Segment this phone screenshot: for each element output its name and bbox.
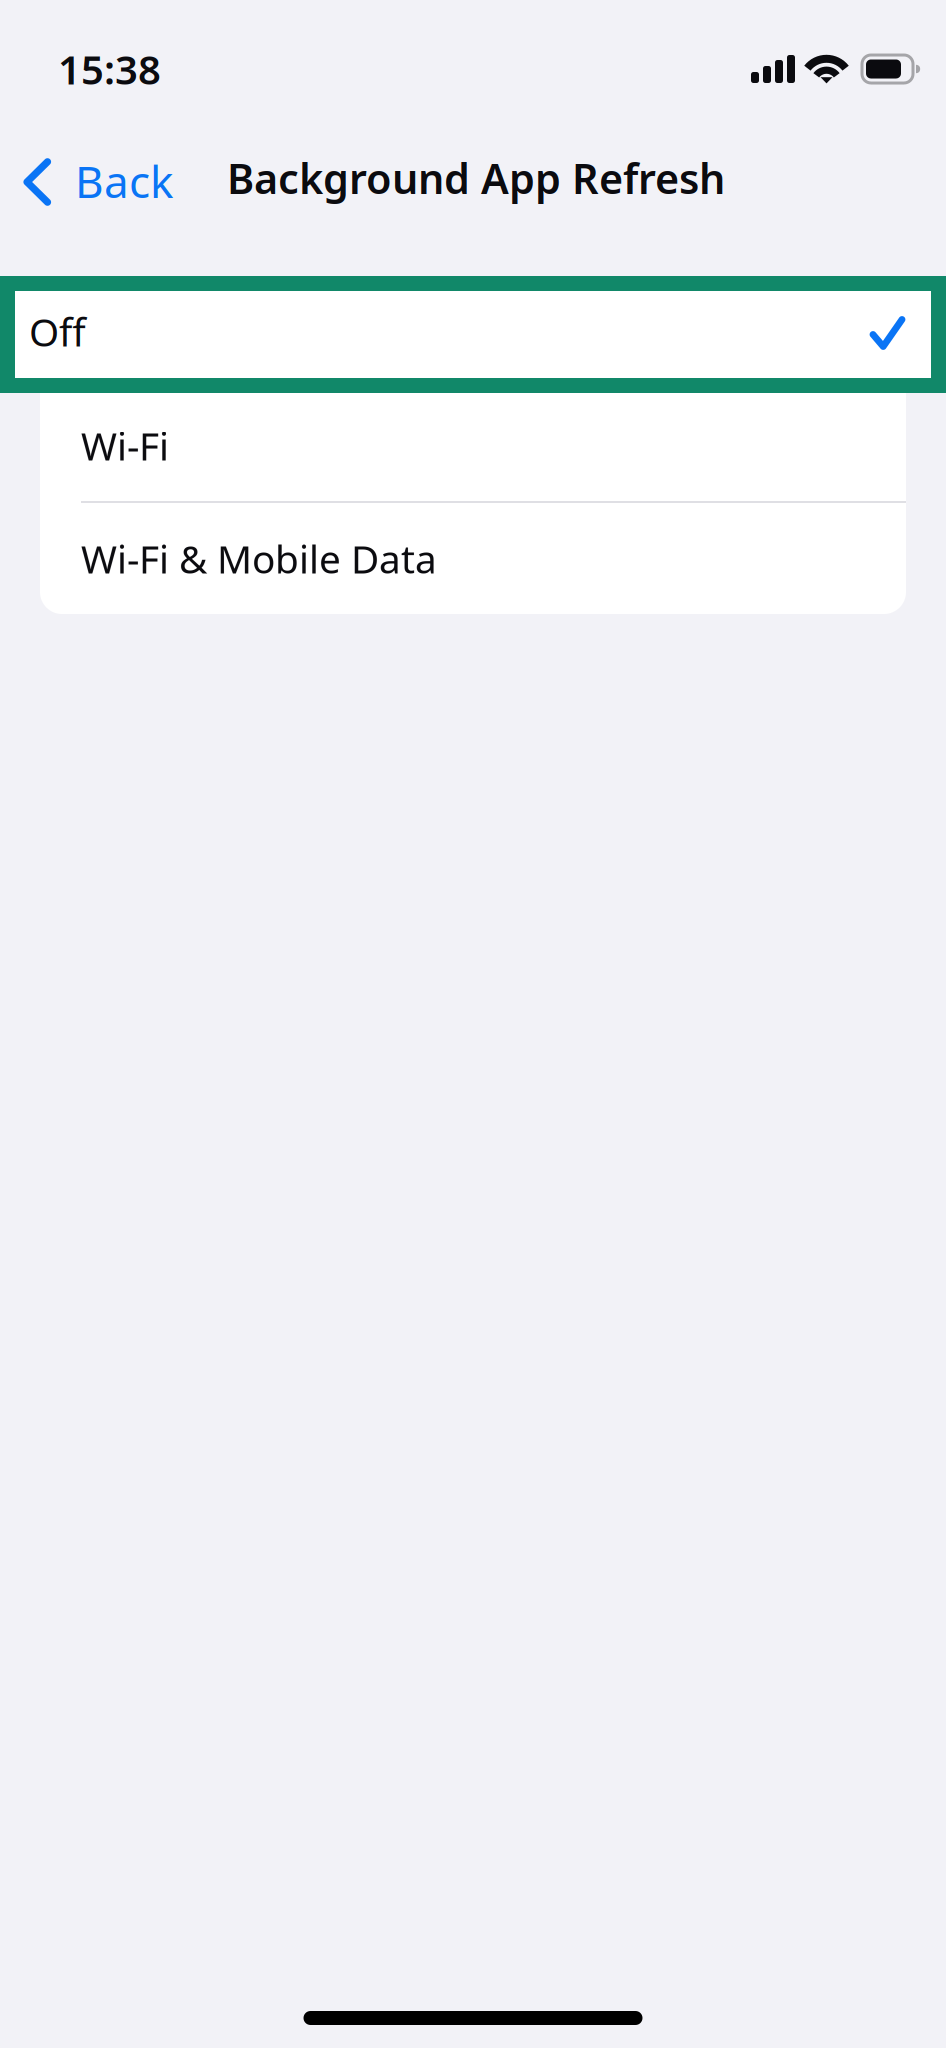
staticText: Wi-Fi & Mobile Data — [81, 533, 437, 584]
button[interactable]: Back — [0, 138, 193, 232]
button[interactable]: Wi-Fi — [40, 390, 906, 501]
button[interactable]: Off — [0, 276, 946, 393]
button[interactable]: Wi-Fi & Mobile Data — [40, 503, 906, 614]
staticText: Back — [75, 152, 173, 210]
staticText: Background App Refresh — [227, 151, 725, 205]
staticText: 15:38 — [58, 42, 161, 95]
staticText: Off — [29, 306, 86, 357]
staticText: Wi-Fi — [81, 420, 169, 471]
